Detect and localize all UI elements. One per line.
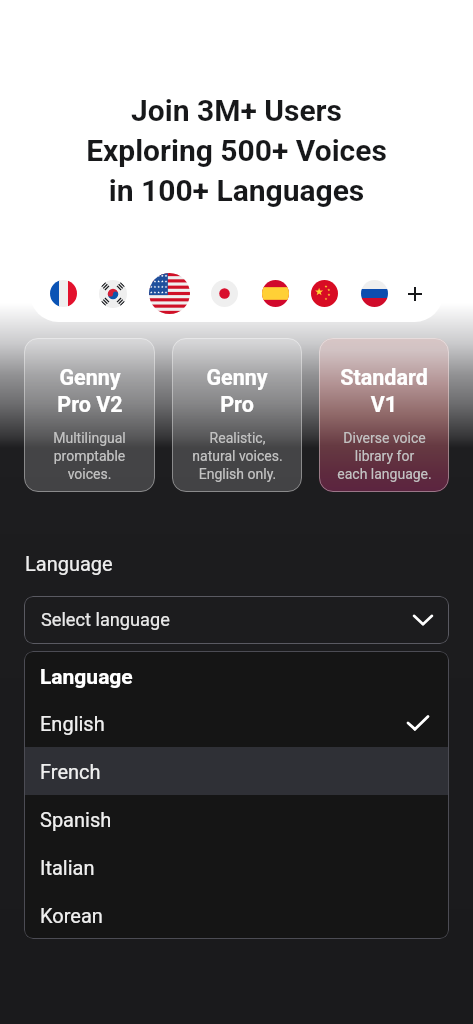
staticText: Realistic, natural voices. English only. — [192, 430, 283, 483]
button[interactable]: RU — [361, 280, 388, 307]
staticText: Select language — [41, 609, 170, 630]
button[interactable]: Standard V1 — [319, 338, 449, 492]
button[interactable]: Genny Pro V2 — [24, 338, 155, 492]
staticText: Standard V1 — [340, 365, 428, 418]
staticText: Join 3M+ Users Exploring 500+ Voices in … — [0, 93, 473, 208]
staticText: Language — [25, 552, 113, 575]
staticText: English — [40, 712, 105, 735]
staticText: Language — [40, 665, 133, 690]
button[interactable]: JP — [211, 280, 238, 307]
button[interactable]: Korean — [24, 891, 449, 939]
button[interactable]: ES — [262, 280, 289, 307]
button[interactable]: FR — [50, 280, 77, 307]
staticText: Genny Pro — [206, 365, 268, 418]
button[interactable]: Genny Pro — [172, 338, 302, 492]
button[interactable]: Select language — [24, 596, 449, 644]
staticText: Spanish — [40, 808, 112, 831]
button[interactable]: US — [149, 273, 190, 314]
button[interactable]: French — [24, 747, 449, 795]
button[interactable]: Spanish — [24, 795, 449, 843]
button[interactable]: FR — [30, 265, 443, 322]
button[interactable]: CN — [311, 280, 338, 307]
staticText: Genny Pro V2 — [57, 365, 123, 418]
staticText: Italian — [40, 856, 95, 879]
staticText: French — [40, 760, 101, 783]
button[interactable]: Italian — [24, 843, 449, 891]
button[interactable]: KR — [99, 280, 127, 308]
staticText: Korean — [40, 904, 103, 927]
button[interactable]: English — [24, 699, 449, 747]
button[interactable]: Add language — [400, 279, 430, 309]
staticText: Multilingual promptable voices. — [53, 430, 126, 483]
staticText: Diverse voice library for each language. — [337, 430, 432, 483]
